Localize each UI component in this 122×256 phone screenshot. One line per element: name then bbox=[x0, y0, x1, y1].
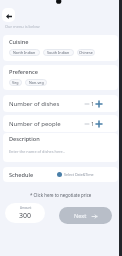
button[interactable]: Decrease Number of people bbox=[83, 120, 91, 128]
staticText: North Indian bbox=[13, 50, 36, 55]
button[interactable]: Back bbox=[2, 8, 15, 22]
staticText: 300 bbox=[19, 211, 32, 221]
button[interactable]: Veg bbox=[9, 79, 22, 86]
button[interactable]: Increase Number of dishes bbox=[95, 100, 103, 108]
staticText: Amount bbox=[20, 206, 32, 210]
staticText: Next bbox=[74, 212, 87, 220]
staticText: Schedule bbox=[9, 171, 34, 179]
staticText: Preference bbox=[9, 68, 39, 76]
button[interactable]: Next bbox=[59, 207, 112, 224]
staticText: Chinese bbox=[79, 50, 93, 55]
staticText: Our menu is below bbox=[5, 24, 40, 29]
staticText: Enter the name of dishes here.. bbox=[9, 149, 65, 154]
staticText: South Indian bbox=[47, 50, 70, 55]
button[interactable]: Chinese bbox=[77, 49, 95, 56]
button[interactable]: Select Date&Time bbox=[57, 172, 94, 177]
staticText: * Click here to negotiate price bbox=[30, 192, 92, 198]
button[interactable]: South Indian bbox=[43, 49, 74, 56]
staticText: Description bbox=[9, 135, 40, 143]
staticText: Number of dishes bbox=[9, 100, 60, 108]
button[interactable]: North Indian bbox=[9, 49, 40, 56]
staticText: Select Date&Time bbox=[64, 172, 94, 177]
staticText: Cuisine bbox=[9, 38, 29, 46]
button[interactable]: * Click here to negotiate price bbox=[0, 191, 122, 199]
button[interactable]: Enter the name of dishes here.. bbox=[9, 149, 115, 154]
staticText: Number of people bbox=[9, 120, 61, 128]
button[interactable]: Non-veg bbox=[25, 79, 47, 86]
staticText: 1 bbox=[91, 100, 95, 107]
staticText: Non-veg bbox=[29, 80, 44, 85]
button[interactable]: Decrease Number of dishes bbox=[83, 100, 91, 108]
staticText: 1 bbox=[91, 120, 95, 127]
button[interactable]: Increase Number of people bbox=[95, 120, 103, 128]
staticText: Veg bbox=[12, 80, 19, 85]
button[interactable]: Amount bbox=[5, 203, 45, 223]
